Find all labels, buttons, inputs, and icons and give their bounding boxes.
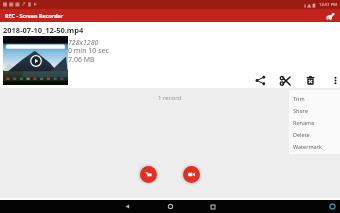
button[interactable]: Recents — [207, 201, 218, 212]
button[interactable]: Screenshot — [328, 202, 337, 211]
button[interactable]: Home — [165, 201, 176, 212]
button[interactable]: Settings — [324, 9, 337, 22]
button[interactable]: Watermark — [289, 140, 340, 152]
button[interactable]: Back — [122, 201, 133, 212]
button[interactable]: Record camera — [183, 166, 200, 183]
staticText: Share — [293, 107, 308, 114]
staticText: 2018-07-10_12-50.mp4 — [3, 25, 84, 35]
staticText: 1 record — [158, 94, 182, 102]
button[interactable]: Delete — [289, 128, 340, 140]
button[interactable]: 2018-07-10_12-50.mp4 — [0, 22, 340, 88]
button[interactable]: Trim — [275, 70, 295, 90]
button[interactable]: Share — [289, 104, 340, 116]
staticText: REC - Screen Recorder — [5, 12, 64, 19]
button[interactable]: Record screen — [140, 166, 157, 183]
button[interactable]: Rename — [289, 116, 340, 128]
button[interactable]: More options — [325, 70, 340, 90]
staticText: 12:51 PM — [319, 2, 338, 8]
staticText: 728x1280 — [68, 38, 99, 48]
button[interactable]: Delete — [300, 70, 320, 90]
button[interactable]: Trim — [289, 92, 340, 104]
staticText: Watermark — [293, 143, 322, 150]
staticText: Delete — [293, 131, 310, 138]
staticText: Rename — [293, 119, 315, 126]
staticText: Trim — [293, 95, 305, 102]
staticText: 0 min 10 sec — [68, 46, 109, 56]
staticText: 7.06 MB — [68, 55, 95, 65]
button[interactable]: Share — [250, 70, 270, 90]
